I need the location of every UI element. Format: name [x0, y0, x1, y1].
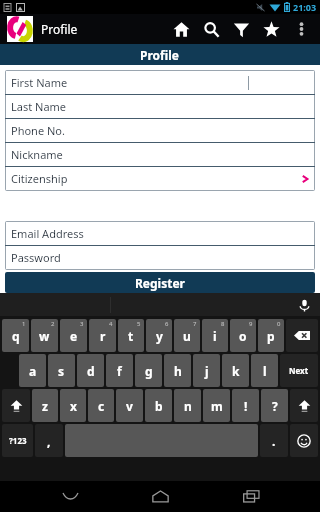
staticText: .: [272, 433, 276, 449]
button[interactable]: a: [19, 354, 46, 387]
button[interactable]: ,: [35, 424, 63, 457]
staticText: 6: [165, 320, 169, 328]
button[interactable]: Home: [166, 14, 196, 44]
button[interactable]: Home: [139, 481, 181, 512]
staticText: p: [267, 328, 275, 344]
staticText: 4: [109, 320, 113, 328]
button[interactable]: t: [118, 319, 144, 352]
button[interactable]: c: [88, 389, 114, 422]
button[interactable]: App logo: [7, 16, 33, 42]
staticText: ?123: [9, 435, 27, 446]
button[interactable]: l: [251, 354, 278, 387]
staticText: 1: [22, 320, 26, 328]
staticText: Last Name: [11, 99, 67, 114]
button[interactable]: g: [135, 354, 162, 387]
staticText: Phone No.: [11, 123, 65, 138]
button[interactable]: First Name: [5, 71, 315, 94]
staticText: b: [155, 398, 163, 414]
staticText: 8: [221, 320, 225, 328]
button[interactable]: m: [203, 389, 230, 422]
staticText: 2: [51, 320, 55, 328]
staticText: o: [239, 328, 247, 344]
staticText: r: [100, 328, 106, 344]
button[interactable]: ?123: [2, 424, 33, 457]
staticText: Email Address: [11, 226, 84, 241]
staticText: u: [183, 328, 191, 344]
staticText: c: [98, 398, 105, 414]
button[interactable]: v: [116, 389, 143, 422]
staticText: x: [70, 398, 77, 414]
button[interactable]: Favorites: [256, 14, 286, 44]
staticText: 5: [137, 320, 141, 328]
button[interactable]: Search: [196, 14, 226, 44]
staticText: !: [244, 398, 248, 414]
button[interactable]: w: [31, 319, 58, 352]
button[interactable]: b: [145, 389, 172, 422]
button[interactable]: !: [232, 389, 259, 422]
button[interactable]: d: [77, 354, 104, 387]
button[interactable]: Voice input: [294, 295, 314, 315]
button[interactable]: f: [106, 354, 133, 387]
staticText: Profile: [41, 21, 78, 37]
staticText: Register: [135, 275, 185, 291]
staticText: Citizenship: [11, 171, 68, 186]
button[interactable]: y: [146, 319, 172, 352]
button[interactable]: h: [164, 354, 191, 387]
button[interactable]: n: [174, 389, 201, 422]
staticText: Next: [289, 365, 309, 376]
staticText: t: [128, 328, 134, 344]
staticText: i: [213, 328, 217, 344]
button[interactable]: Email Address: [5, 222, 315, 245]
staticText: z: [42, 398, 48, 414]
staticText: d: [87, 363, 95, 379]
staticText: v: [126, 398, 133, 414]
button[interactable]: Phone No.: [5, 119, 315, 142]
button[interactable]: ?: [261, 389, 288, 422]
button[interactable]: k: [222, 354, 249, 387]
staticText: e: [70, 328, 78, 344]
button[interactable]: Backspace: [286, 319, 318, 352]
button[interactable]: Next: [280, 354, 318, 387]
staticText: q: [12, 328, 20, 344]
button[interactable]: e: [60, 319, 87, 352]
staticText: 3: [80, 320, 84, 328]
staticText: k: [232, 363, 240, 379]
staticText: f: [117, 363, 122, 379]
button[interactable]: Shift: [290, 389, 318, 422]
staticText: h: [174, 363, 182, 379]
button[interactable]: Nickname: [5, 143, 315, 166]
button[interactable]: More options: [286, 14, 316, 44]
button[interactable]: Emoji: [290, 424, 318, 457]
button[interactable]: Back: [49, 481, 91, 512]
button[interactable]: Citizenship: [5, 167, 315, 190]
button[interactable]: j: [193, 354, 220, 387]
button[interactable]: q: [2, 319, 29, 352]
button[interactable]: Recent apps: [230, 481, 272, 512]
button[interactable]: Register: [5, 272, 315, 293]
button[interactable]: Filter: [226, 14, 256, 44]
staticText: a: [29, 363, 37, 379]
button[interactable]: z: [32, 389, 58, 422]
staticText: s: [58, 363, 65, 379]
staticText: y: [156, 328, 163, 344]
button[interactable]: u: [174, 319, 200, 352]
staticText: First Name: [11, 75, 68, 90]
button[interactable]: Shift: [2, 389, 30, 422]
button[interactable]: i: [202, 319, 228, 352]
staticText: l: [263, 363, 267, 379]
button[interactable]: s: [48, 354, 75, 387]
button[interactable]: Password: [5, 246, 315, 269]
button[interactable]: Last Name: [5, 95, 315, 118]
staticText: Password: [11, 250, 61, 265]
staticText: g: [145, 363, 153, 379]
staticText: ?: [272, 398, 278, 414]
button[interactable]: p: [258, 319, 284, 352]
staticText: 7: [193, 320, 197, 328]
staticText: ,: [47, 433, 51, 449]
button[interactable]: r: [89, 319, 116, 352]
button[interactable]: x: [60, 389, 86, 422]
staticText: 0: [277, 320, 281, 328]
button[interactable]: o: [230, 319, 256, 352]
button[interactable]: .: [260, 424, 288, 457]
